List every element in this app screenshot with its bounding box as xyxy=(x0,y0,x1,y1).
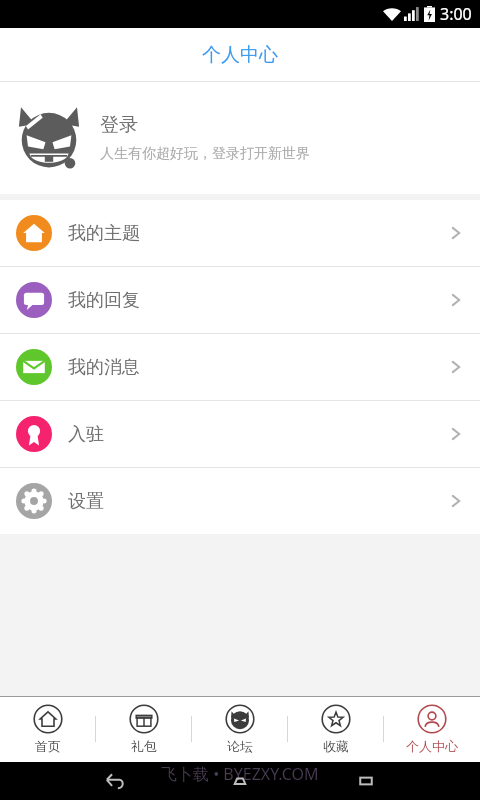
staticText: 人生有你超好玩，登录打开新世界 xyxy=(100,145,310,163)
staticText: 设置 xyxy=(68,490,448,513)
staticText: 论坛 xyxy=(227,738,253,754)
staticText: 登录 xyxy=(100,113,138,137)
staticText: 我的主题 xyxy=(68,222,448,245)
staticText: 礼包 xyxy=(131,738,157,754)
button[interactable]: 我的主题 xyxy=(0,200,480,266)
staticText: 入驻 xyxy=(68,423,448,446)
button[interactable]: 论坛 xyxy=(192,696,288,762)
staticText: 个人中心 xyxy=(406,738,458,754)
button[interactable]: 收藏 xyxy=(288,696,384,762)
staticText: 我的回复 xyxy=(68,289,448,312)
other: Back xyxy=(102,769,126,793)
button[interactable]: 我的回复 xyxy=(0,267,480,333)
button[interactable]: 登录 xyxy=(0,82,480,194)
other: Recents xyxy=(354,769,378,793)
button[interactable]: 个人中心 xyxy=(384,696,480,762)
button[interactable]: 设置 xyxy=(0,468,480,534)
other: Home xyxy=(228,769,252,793)
button[interactable]: 礼包 xyxy=(96,696,192,762)
button[interactable]: 入驻 xyxy=(0,401,480,467)
staticText: 3:00 xyxy=(440,3,472,25)
staticText: 飞卜载 • BYEZXY.COM xyxy=(161,763,319,785)
staticText: 收藏 xyxy=(323,738,349,754)
staticText: 首页 xyxy=(35,738,61,754)
button[interactable]: 首页 xyxy=(0,696,96,762)
staticText: 个人中心 xyxy=(202,43,278,67)
staticText: 我的消息 xyxy=(68,356,448,379)
button[interactable]: 我的消息 xyxy=(0,334,480,400)
